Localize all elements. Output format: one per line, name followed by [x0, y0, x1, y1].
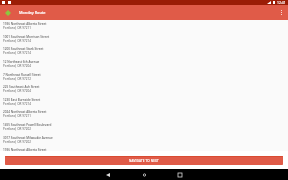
staticText: Portland, OR 97202	[3, 127, 31, 131]
staticText: Portland, OR 97214	[3, 39, 31, 43]
staticText: 1230 East Burnside Street	[3, 98, 41, 102]
staticText: 12:41	[277, 0, 286, 5]
staticText: Portland, OR 97204	[3, 89, 31, 93]
staticText: Portland, OR 97204	[3, 64, 31, 68]
button[interactable]: 7 Northeast Russell Street	[0, 73, 288, 86]
staticText: Portland, OR 97214	[3, 51, 31, 55]
staticText: 1936 Northeast Alberta Street	[3, 22, 47, 26]
button[interactable]: 1936 Northeast Alberta Street	[0, 22, 288, 35]
staticText: 1455 Southeast Powell Boulevard	[3, 123, 52, 127]
button[interactable]: 2024 Northeast Alberta Street	[0, 110, 288, 123]
staticText: NAVIGATE TO NEXT	[129, 159, 159, 163]
staticText: 12 Northeast 6th Avenue	[3, 60, 40, 64]
staticText: 1001 Southeast Morrison Street	[3, 35, 50, 39]
staticText: 225 Southeast Ash Street	[3, 85, 40, 89]
staticText: Portland, OR 97214	[3, 102, 31, 106]
button[interactable]: More options	[275, 5, 287, 20]
button[interactable]: 1455 Southeast Powell Boulevard	[0, 123, 288, 136]
button[interactable]: 1936 Northeast Alberta Street	[0, 148, 288, 151]
button[interactable]: Back	[90, 169, 126, 180]
staticText: Portland, OR 97212	[3, 77, 31, 81]
staticText: Portland, OR 97211	[3, 26, 31, 30]
button[interactable]: 12 Northeast 6th Avenue	[0, 60, 288, 73]
staticText: Portland, OR 97202	[3, 140, 31, 144]
staticText: Monday Route	[19, 10, 46, 15]
button[interactable]: 225 Southeast Ash Street	[0, 85, 288, 98]
button[interactable]: 3017 Southeast Milwaukie Avenue	[0, 136, 288, 149]
button[interactable]: Home	[126, 169, 162, 180]
other: Route	[5, 10, 11, 16]
staticText: 2024 Northeast Alberta Street	[3, 110, 47, 114]
staticText: 1936 Northeast Alberta Street	[3, 148, 47, 151]
staticText: 1200 Southeast Stark Street	[3, 47, 44, 51]
button[interactable]: 1001 Southeast Morrison Street	[0, 35, 288, 48]
button[interactable]: Recent apps	[162, 169, 198, 180]
button[interactable]: 1230 East Burnside Street	[0, 98, 288, 111]
staticText: Portland, OR 97211	[3, 114, 31, 118]
button[interactable]: 1200 Southeast Stark Street	[0, 47, 288, 60]
button[interactable]: NAVIGATE TO NEXT	[5, 156, 283, 165]
staticText: 3017 Southeast Milwaukie Avenue	[3, 136, 53, 140]
staticText: 7 Northeast Russell Street	[3, 73, 41, 77]
